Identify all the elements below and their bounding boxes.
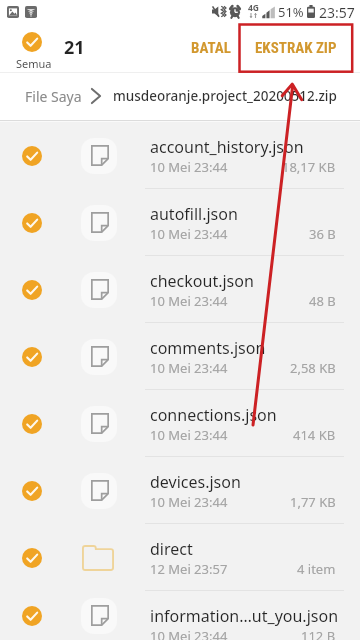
staticText: 10 Mei 23:44	[150, 158, 228, 176]
staticText: information…ut_you.json	[150, 605, 339, 627]
staticText: 1,77 KB	[290, 493, 336, 511]
staticText: EKSTRAK ZIP	[255, 39, 337, 57]
other: Dipilih	[22, 606, 42, 626]
staticText: 10 Mei 23:44	[150, 292, 228, 310]
button[interactable]: Pilih semua	[12, 24, 53, 72]
staticText: 36 B	[309, 225, 336, 243]
staticText: 21	[64, 35, 85, 60]
staticText: BATAL	[191, 39, 231, 57]
button[interactable]: Dipilih	[0, 122, 360, 189]
staticText: 12 Mei 23:57	[150, 560, 228, 578]
staticText: autofill.json	[150, 203, 238, 225]
staticText: 10 Mei 23:44	[150, 225, 228, 243]
staticText: direct	[150, 538, 193, 560]
button[interactable]: Dipilih	[0, 189, 360, 256]
staticText: 2,58 KB	[290, 359, 336, 377]
other: Dipilih	[22, 414, 42, 434]
staticText: account_history.json	[150, 136, 304, 158]
staticText: 4G	[248, 2, 260, 14]
staticText: connections.json	[150, 404, 277, 426]
staticText: File Saya	[25, 87, 82, 106]
button[interactable]: BATAL	[181, 24, 241, 72]
staticText: musdeoranje.project_20200512.zip	[113, 87, 337, 105]
other: Pilih semua	[22, 32, 42, 52]
staticText: 4 item	[297, 560, 336, 578]
other: Dipilih	[22, 347, 42, 367]
button[interactable]: Dipilih	[0, 591, 360, 640]
staticText: 414 KB	[293, 426, 336, 444]
staticText: 10 Mei 23:44	[150, 359, 228, 377]
staticText: 48 B	[309, 292, 336, 310]
button[interactable]: Dipilih	[0, 256, 360, 323]
staticText: 23:57	[319, 3, 355, 22]
staticText: comments.json	[150, 337, 266, 359]
staticText: 112 B	[301, 627, 336, 640]
other: Dipilih	[22, 213, 42, 233]
button[interactable]: File Saya	[25, 87, 82, 106]
staticText: 10 Mei 23:44	[150, 493, 228, 511]
button[interactable]: Dipilih	[0, 524, 360, 591]
staticText: 10 Mei 23:44	[150, 627, 228, 640]
other: Dipilih	[22, 481, 42, 501]
staticText: 10 Mei 23:44	[150, 426, 228, 444]
button[interactable]: Dipilih	[0, 323, 360, 390]
staticText: checkout.json	[150, 270, 254, 292]
other: Dipilih	[22, 146, 42, 166]
other: Dipilih	[22, 548, 42, 568]
other: Dipilih	[22, 280, 42, 300]
button[interactable]: Dipilih	[0, 457, 360, 524]
staticText: 51%	[278, 3, 304, 21]
staticText: 18,17 KB	[282, 158, 336, 176]
button[interactable]: EKSTRAK ZIP	[246, 24, 346, 72]
staticText: devices.json	[150, 471, 241, 493]
button[interactable]: Dipilih	[0, 390, 360, 457]
staticText: Semua	[16, 56, 52, 71]
